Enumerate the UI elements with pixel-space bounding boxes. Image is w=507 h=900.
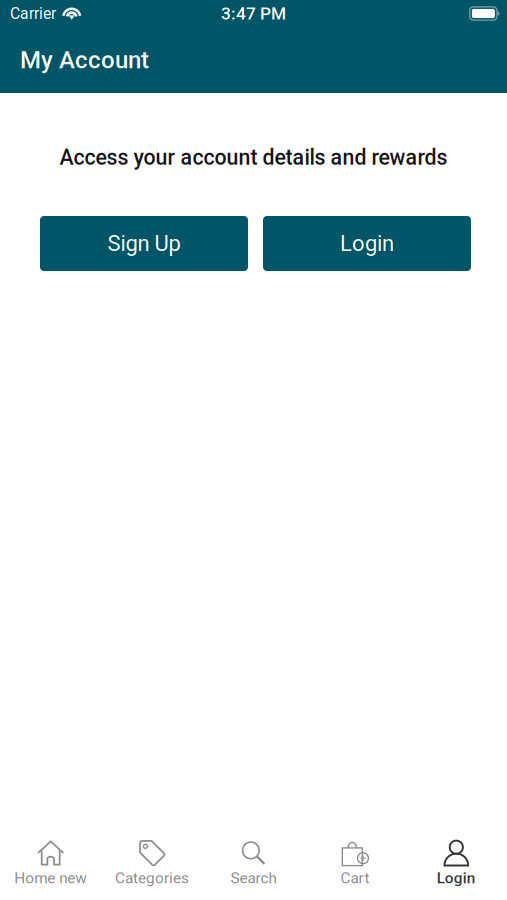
staticText: Home new (14, 869, 87, 887)
button[interactable]: Home new (0, 834, 101, 900)
button[interactable]: Cart (304, 834, 406, 900)
staticText: Login (437, 869, 476, 887)
staticText: Search (230, 869, 276, 887)
staticText: Sign Up (107, 231, 180, 256)
button[interactable]: Login (406, 834, 507, 900)
button[interactable]: Categories (101, 834, 203, 900)
staticText: Carrier (10, 4, 56, 23)
staticText: My Account (20, 46, 149, 74)
staticText: Login (340, 231, 394, 256)
staticText: 3:47 PM (221, 3, 286, 24)
button[interactable]: Sign Up (40, 216, 248, 271)
button[interactable]: Login (263, 216, 471, 271)
staticText: Access your account details and rewards (59, 145, 447, 170)
staticText: Cart (340, 869, 369, 887)
staticText: Categories (115, 869, 189, 887)
button[interactable]: Search (203, 834, 304, 900)
